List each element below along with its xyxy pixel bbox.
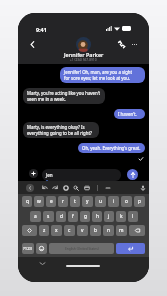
button[interactable]: Jen [42,169,121,181]
button[interactable]: Enter [116,243,145,254]
button[interactable]: o [121,196,132,207]
staticText: d [60,213,63,220]
button[interactable]: Keyboard tool [82,183,91,192]
button[interactable]: Keyboard tool [71,183,80,192]
button[interactable]: Keyboard tool [138,183,147,192]
button[interactable]: Keyboard tool [61,183,70,192]
staticText: p [138,198,141,205]
button[interactable]: Marty, is everything okay? Is everything… [23,122,99,138]
button[interactable]: h [92,211,102,222]
button[interactable]: a [30,211,41,222]
button[interactable]: Backspace [129,225,145,236]
staticText: Jen [46,172,53,178]
staticText: English (United States) [65,247,99,251]
button[interactable]: g [80,211,90,222]
staticText: Jennifer! Oh, man, are you a sight for s… [64,69,133,81]
staticText: k [120,213,123,220]
staticText: v [81,227,84,234]
button[interactable]: Oh, yeah. Everything's great. [78,143,145,153]
button[interactable]: x [51,225,62,236]
staticText: z [43,227,46,234]
button[interactable]: Attach [29,169,38,178]
button[interactable]: Shift [22,225,37,236]
button[interactable]: k [116,211,126,222]
staticText: u [99,198,102,205]
button[interactable]: Keyboard tool [40,183,49,192]
staticText: f [72,213,74,220]
staticText: b [94,227,97,234]
button[interactable]: u [95,196,106,207]
button[interactable]: y [82,196,93,207]
button[interactable]: Keyboard tool [50,183,59,192]
staticText: t [74,198,76,205]
button[interactable]: Send [127,169,138,180]
button[interactable]: ?123 [22,243,34,254]
button[interactable]: z [39,225,49,236]
staticText: m [119,227,124,234]
staticText: Marty, is everything okay? Is everything… [27,124,92,136]
staticText: a [34,213,37,220]
button[interactable]: b [90,225,101,236]
staticText: o [125,198,128,205]
button[interactable]: l [128,211,138,222]
staticText: w [37,198,41,205]
button[interactable]: e [46,196,56,207]
button[interactable]: t [70,196,80,207]
staticText: r [62,198,64,205]
staticText: j [108,213,110,220]
button[interactable]: Back [26,38,39,51]
button[interactable]: Hide keyboard [38,259,47,268]
button[interactable]: n [103,225,114,236]
button[interactable]: r [58,196,68,207]
button[interactable]: Contact photo [76,37,91,52]
staticText: Marty, you're acting like you haven't se… [27,90,101,102]
button[interactable]: Keyboard tool [103,183,112,192]
button[interactable]: c [64,225,75,236]
staticText: x [55,227,58,234]
button[interactable]: s [43,211,54,222]
button[interactable]: I haven't. [114,109,145,119]
button[interactable]: Call [115,38,127,50]
staticText: i [113,198,115,205]
staticText: l [132,213,134,220]
button[interactable]: f [68,211,78,222]
staticText: q [26,198,29,205]
staticText: 9:41 [36,26,47,33]
button[interactable]: Jennifer! Oh, man, are you a sight for s… [60,67,145,83]
button[interactable]: m [116,225,127,236]
button[interactable]: j [104,211,114,222]
staticText: I haven't. [118,111,137,117]
staticText: s [47,213,50,220]
staticText: +1 (234) 567-8910 [70,58,97,62]
button[interactable]: d [56,211,66,222]
staticText: ?123 [23,246,33,252]
staticText: g [84,213,87,220]
staticText: Jennifer Parker [64,51,104,58]
button[interactable]: p [134,196,145,207]
staticText: c [68,227,71,234]
button[interactable]: English (United States) [49,243,114,254]
button[interactable]: v [77,225,88,236]
staticText: h [96,213,99,220]
staticText: Oh, yeah. Everything's great. [82,145,141,151]
button[interactable]: More options [128,38,140,50]
staticText: e [50,198,53,205]
staticText: n [107,227,110,234]
button[interactable]: Emoji [36,243,47,254]
button[interactable]: q [22,196,32,207]
button[interactable]: Marty, you're acting like you haven't se… [23,88,105,104]
button[interactable]: Collapse toolbar [26,184,34,192]
button[interactable]: i [108,196,119,207]
staticText: y [86,198,89,205]
button[interactable]: w [34,196,44,207]
